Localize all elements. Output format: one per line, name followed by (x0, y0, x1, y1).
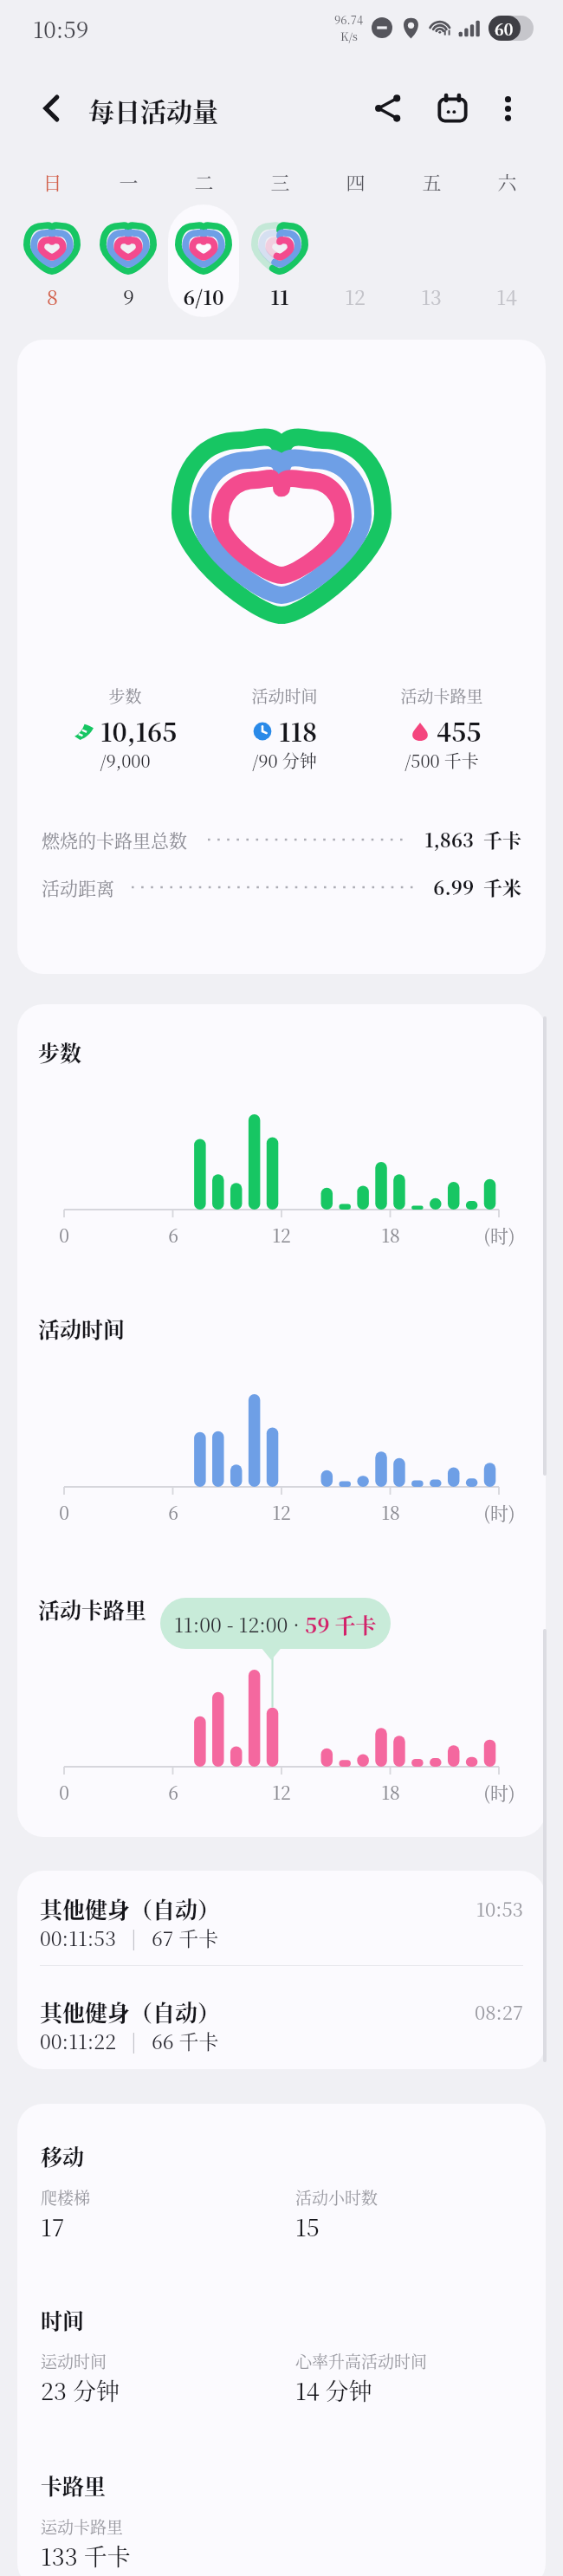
button[interactable] (0, 1871, 563, 1965)
staticText: 12 (345, 282, 366, 311)
staticText: 11:00 - 12:00 · (174, 1610, 305, 1638)
staticText: 四 (346, 168, 366, 196)
staticText: 10,165 (100, 713, 178, 749)
staticText: 12 (272, 1779, 291, 1805)
button[interactable]: Share (360, 81, 416, 136)
staticText: 18 (381, 1499, 400, 1525)
staticText: 13 (421, 282, 442, 311)
staticText: 6 (168, 1222, 178, 1248)
staticText: 9 (123, 282, 134, 311)
staticText: 96.74 (334, 11, 364, 28)
staticText: 运动卡路里 (41, 2514, 124, 2538)
staticText: 17 (41, 2209, 65, 2243)
staticText: 14 (496, 282, 517, 311)
staticText: 14 分钟 (295, 2373, 372, 2407)
button[interactable]: Calendar (424, 81, 480, 136)
staticText: 步数 (108, 684, 142, 707)
staticText: 10:59 (33, 12, 89, 44)
button[interactable] (15, 201, 89, 319)
button[interactable] (17, 340, 546, 974)
staticText: 步数 (38, 1036, 82, 1067)
staticText: K/s (340, 28, 358, 44)
staticText: 10:53 (476, 1895, 523, 1923)
staticText: 8 (47, 282, 58, 311)
staticText: 6 (168, 1779, 178, 1805)
staticText: 60 (495, 17, 514, 40)
staticText: 爬楼梯 (41, 2185, 91, 2209)
staticText: 一 (119, 168, 139, 196)
staticText: 18 (381, 1222, 400, 1248)
staticText: 活动卡路里 (400, 684, 483, 707)
staticText: 其他健身（自动） (40, 1892, 221, 1924)
staticText: 118 (279, 713, 318, 749)
staticText: 0 (59, 1222, 69, 1248)
button[interactable] (166, 201, 241, 319)
staticText: (时) (483, 1222, 515, 1248)
button[interactable] (318, 201, 392, 319)
staticText: 移动 (41, 2140, 85, 2171)
button[interactable]: More options (480, 81, 535, 136)
button[interactable] (91, 201, 165, 319)
staticText: (时) (483, 1499, 515, 1525)
button[interactable] (243, 201, 317, 319)
button[interactable] (0, 816, 563, 863)
button[interactable] (394, 201, 469, 319)
staticText: 6 (168, 1499, 178, 1525)
staticText: 66 千卡 (152, 2027, 219, 2055)
button[interactable] (0, 1974, 563, 2068)
staticText: 二 (194, 168, 214, 196)
staticText: (时) (483, 1779, 515, 1805)
staticText: 00:11:22 (40, 2027, 116, 2055)
staticText: 其他健身（自动） (40, 1995, 221, 2028)
staticText: | (116, 2027, 152, 2054)
staticText: 67 千卡 (152, 1924, 219, 1952)
staticText: 时间 (41, 2304, 85, 2335)
staticText: /9,000 (100, 748, 151, 773)
staticText: 0 (59, 1779, 69, 1805)
button[interactable]: Back (24, 81, 80, 136)
staticText: 12 (272, 1222, 291, 1248)
staticText: 每日活动量 (88, 91, 218, 128)
staticText: 00:11:53 (40, 1924, 116, 1952)
staticText: 12 (272, 1499, 291, 1525)
staticText: 活动距离 (42, 874, 114, 900)
staticText: 日 (42, 168, 62, 196)
button[interactable] (168, 204, 239, 317)
staticText: 卡路里 (41, 2469, 107, 2501)
staticText: 133 千卡 (41, 2539, 131, 2573)
staticText: 11 (270, 282, 289, 311)
staticText: 运动时间 (41, 2349, 107, 2372)
staticText: 0 (59, 1499, 69, 1525)
staticText: 18 (381, 1779, 400, 1805)
staticText: 活动时间 (251, 684, 318, 707)
staticText: 燃烧的卡路里总数 (42, 827, 187, 853)
button[interactable] (0, 864, 563, 911)
staticText: /500 千卡 (404, 748, 479, 773)
staticText: 活动卡路里 (38, 1593, 147, 1625)
staticText: 五 (422, 168, 442, 196)
staticText: 六 (497, 168, 517, 196)
staticText: 6.99 千米 (433, 873, 521, 901)
staticText: 15 (295, 2209, 320, 2243)
staticText: 23 分钟 (41, 2373, 120, 2407)
staticText: 活动时间 (38, 1313, 126, 1344)
staticText: 心率升高活动时间 (295, 2349, 428, 2372)
staticText: 08:27 (474, 1998, 523, 2026)
staticText: 6/10 (183, 282, 224, 311)
staticText: | (116, 1924, 152, 1951)
staticText: 455 (437, 713, 482, 749)
button[interactable] (469, 201, 544, 319)
staticText: /90 分钟 (252, 748, 317, 773)
staticText: 三 (270, 168, 290, 196)
staticText: 活动小时数 (295, 2185, 379, 2209)
staticText: 1,863 千卡 (424, 826, 521, 853)
staticText: 59 千卡 (305, 1609, 377, 1638)
